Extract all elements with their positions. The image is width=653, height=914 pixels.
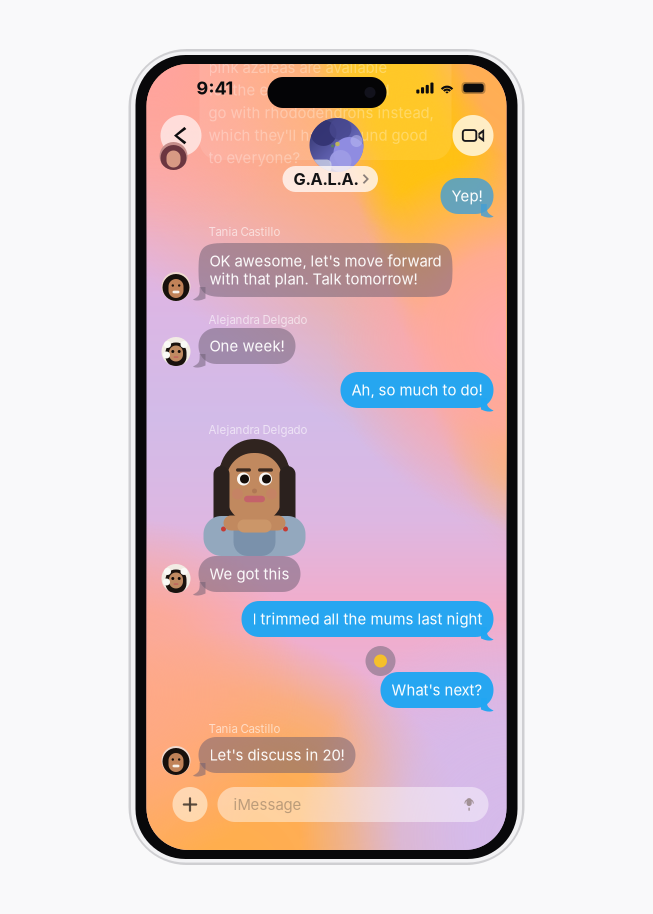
button[interactable]: iMessage bbox=[217, 787, 488, 822]
staticText: which they'll have around good bbox=[208, 126, 427, 144]
button[interactable]: Add attachment bbox=[172, 787, 207, 822]
button[interactable]: Back bbox=[160, 115, 201, 156]
staticText: We got this bbox=[209, 565, 289, 583]
staticText: of flowers just yet, the minimalist bbox=[208, 36, 444, 54]
staticText: Alejandra Delgado bbox=[208, 313, 307, 327]
button[interactable]: Start FaceTime call bbox=[452, 115, 493, 156]
staticText: Tania Castillo bbox=[208, 225, 280, 239]
staticText: Ah, so much to do! bbox=[351, 381, 482, 399]
staticText: pink azaleas are available bbox=[208, 59, 387, 77]
staticText: Tania Castillo bbox=[208, 722, 280, 736]
staticText: Yep! bbox=[451, 187, 482, 205]
staticText: OK awesome, let's move forward with that… bbox=[209, 252, 441, 288]
staticText: for the event, or we could bbox=[208, 81, 389, 99]
staticText: One week! bbox=[209, 337, 284, 355]
button[interactable]: G.A.L.A. bbox=[282, 118, 390, 200]
staticText: 9:41 bbox=[196, 77, 233, 99]
staticText: to everyone? bbox=[208, 149, 300, 167]
staticText: iMessage bbox=[233, 795, 301, 813]
staticText: Alejandra Delgado bbox=[208, 423, 307, 437]
staticText: What's next? bbox=[391, 681, 482, 699]
staticText: Let's discuss in 20! bbox=[209, 746, 344, 764]
staticText: G.A.L.A. bbox=[293, 169, 358, 189]
staticText: I trimmed all the mums last night bbox=[252, 610, 482, 628]
staticText: go with rhododendrons instead, bbox=[208, 104, 433, 122]
